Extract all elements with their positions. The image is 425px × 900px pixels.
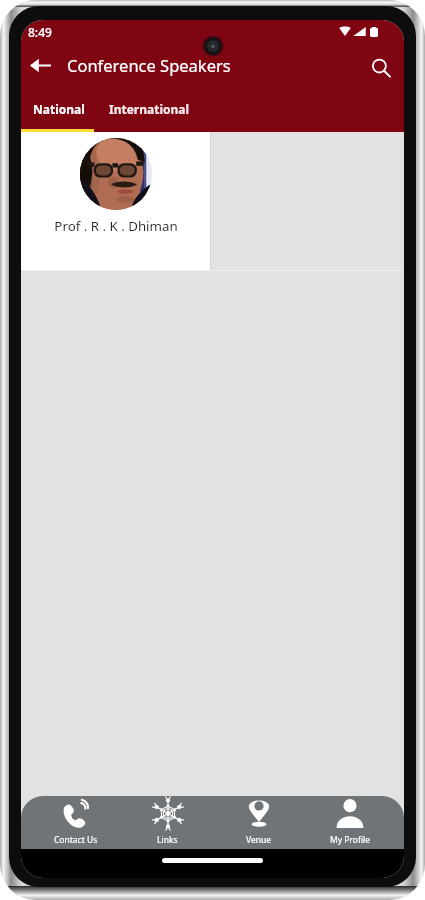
button[interactable]: Prof . R . K . Dhiman <box>21 132 210 270</box>
button[interactable]: Links <box>122 796 213 849</box>
staticText: Links <box>157 834 178 846</box>
staticText: My Profile <box>330 834 370 846</box>
button[interactable]: Back <box>21 46 59 84</box>
staticText: International <box>109 101 190 117</box>
button[interactable]: International <box>97 86 202 132</box>
staticText: Venue <box>246 834 272 846</box>
button[interactable]: Contact Us <box>30 796 122 849</box>
staticText: Conference Speakers <box>67 54 231 76</box>
staticText: 8:49 <box>28 24 52 40</box>
button[interactable]: Venue <box>213 796 304 849</box>
staticText: National <box>33 101 85 117</box>
staticText: Prof . R . K . Dhiman <box>54 217 178 235</box>
button[interactable]: National <box>21 86 97 132</box>
staticText: Contact Us <box>54 834 98 846</box>
button[interactable]: My Profile <box>304 796 395 849</box>
button[interactable]: Search <box>362 50 400 86</box>
